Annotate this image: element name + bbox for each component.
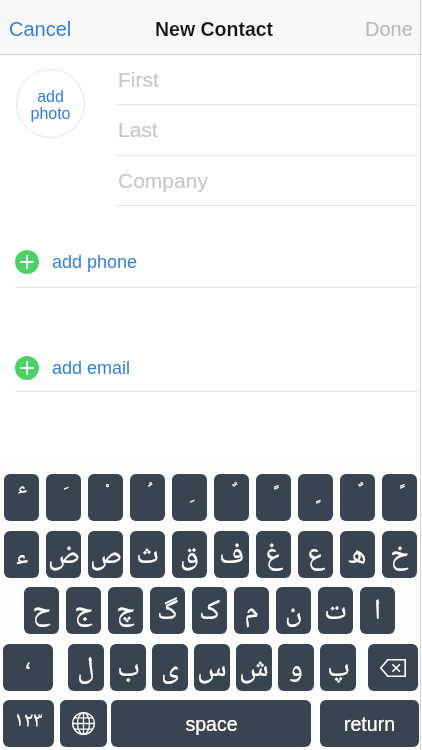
- staticText: ء: [15, 532, 28, 578]
- button[interactable]: َ: [46, 474, 81, 521]
- button[interactable]: ء: [4, 531, 39, 578]
- staticText: New Contact: [155, 18, 274, 40]
- button[interactable]: پ: [320, 644, 356, 691]
- button[interactable]: Change keyboard language: [60, 700, 107, 747]
- staticText: غ: [265, 532, 283, 578]
- staticText: Done: [365, 18, 413, 40]
- staticText: ث: [136, 532, 159, 578]
- staticText: ح: [32, 588, 51, 634]
- button[interactable]: ِ: [172, 474, 207, 521]
- button[interactable]: گ: [150, 587, 185, 634]
- staticText: ت: [324, 588, 347, 634]
- staticText: space: [185, 713, 238, 735]
- button[interactable]: ٌ: [340, 474, 375, 521]
- button[interactable]: ٌ: [214, 474, 249, 521]
- button[interactable]: ب: [110, 644, 146, 691]
- staticText: ک: [199, 588, 220, 634]
- staticText: ض: [48, 532, 80, 578]
- button[interactable]: ش: [236, 644, 272, 691]
- staticText: ج: [74, 588, 93, 634]
- button[interactable]: Cancel: [3, 9, 78, 47]
- staticText: م: [244, 588, 259, 634]
- staticText: ى: [161, 645, 179, 691]
- button[interactable]: ٍ: [298, 474, 333, 521]
- staticText: ع: [307, 532, 325, 578]
- staticText: ه: [348, 532, 367, 578]
- staticText: س: [197, 645, 227, 691]
- staticText: ن: [285, 588, 302, 634]
- button[interactable]: ح: [24, 587, 59, 634]
- staticText: Company: [118, 169, 208, 192]
- button[interactable]: ث: [130, 531, 165, 578]
- staticText: ق: [180, 532, 199, 578]
- button[interactable]: return: [320, 700, 419, 747]
- staticText: ش: [239, 645, 269, 691]
- staticText: ف: [219, 532, 244, 578]
- button[interactable]: add photo: [16, 69, 85, 138]
- button[interactable]: ف: [214, 531, 249, 578]
- staticText: First: [118, 68, 159, 91]
- staticText: و: [289, 645, 303, 691]
- button[interactable]: ت: [318, 587, 353, 634]
- staticText: Last: [118, 118, 158, 141]
- button[interactable]: چ: [108, 587, 143, 634]
- staticText: add email: [52, 358, 131, 378]
- button[interactable]: س: [194, 644, 230, 691]
- button[interactable]: add email: [0, 347, 422, 389]
- staticText: ء: [17, 474, 27, 506]
- button[interactable]: space: [111, 700, 311, 747]
- button[interactable]: ً: [256, 474, 291, 521]
- button[interactable]: Done: [359, 9, 419, 47]
- button[interactable]: و: [278, 644, 314, 691]
- staticText: ۱۲۳: [14, 704, 43, 740]
- button[interactable]: م: [234, 587, 269, 634]
- staticText: ب: [117, 645, 140, 691]
- button[interactable]: ک: [192, 587, 227, 634]
- staticText: return: [344, 713, 395, 735]
- button[interactable]: ل: [68, 644, 104, 691]
- button[interactable]: ى: [152, 644, 188, 691]
- button[interactable]: ص: [88, 531, 123, 578]
- staticText: چ: [116, 588, 135, 634]
- staticText: Cancel: [9, 18, 72, 40]
- staticText: ،: [25, 644, 31, 683]
- button[interactable]: ق: [172, 531, 207, 578]
- staticText: ل: [77, 645, 95, 691]
- staticText: add photo: [30, 88, 71, 123]
- button[interactable]: add phone: [0, 241, 422, 283]
- staticText: گ: [157, 588, 178, 634]
- button[interactable]: ْ: [88, 474, 123, 521]
- button[interactable]: خ: [382, 531, 417, 578]
- button[interactable]: ً: [382, 474, 417, 521]
- staticText: ا: [374, 588, 381, 634]
- button[interactable]: ُ: [130, 474, 165, 521]
- button[interactable]: Backspace: [368, 644, 418, 691]
- button[interactable]: ۱۲۳: [3, 700, 54, 747]
- button[interactable]: ء: [4, 474, 39, 521]
- button[interactable]: ن: [276, 587, 311, 634]
- staticText: خ: [390, 532, 409, 578]
- button[interactable]: ،: [3, 644, 53, 691]
- button[interactable]: ا: [360, 587, 395, 634]
- staticText: add phone: [52, 252, 138, 272]
- button[interactable]: غ: [256, 531, 291, 578]
- staticText: ص: [90, 532, 122, 578]
- button[interactable]: ج: [66, 587, 101, 634]
- staticText: پ: [327, 645, 350, 691]
- button[interactable]: ه: [340, 531, 375, 578]
- button[interactable]: ع: [298, 531, 333, 578]
- button[interactable]: ض: [46, 531, 81, 578]
